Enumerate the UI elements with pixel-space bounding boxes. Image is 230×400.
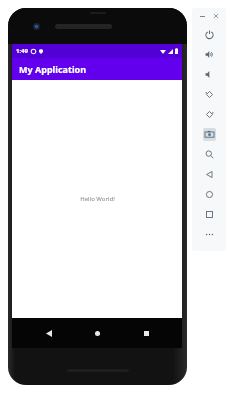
button[interactable]: Volume down <box>192 64 226 84</box>
button[interactable]: Zoom <box>192 144 226 164</box>
button[interactable]: Close <box>211 11 221 21</box>
button[interactable]: Home <box>85 321 109 345</box>
button[interactable]: Volume up <box>192 44 226 64</box>
button[interactable]: Rotate left <box>192 84 226 104</box>
button[interactable]: Take screenshot <box>192 124 226 144</box>
staticText: 1:49 <box>16 47 28 55</box>
button[interactable]: Minimize <box>197 11 207 21</box>
button[interactable]: More <box>192 224 226 244</box>
button[interactable]: Back <box>37 321 61 345</box>
staticText: Hello World! <box>80 195 115 203</box>
button[interactable]: Rotate right <box>192 104 226 124</box>
button[interactable]: Recent apps <box>134 321 158 345</box>
button[interactable]: Overview <box>192 204 226 224</box>
button[interactable]: Power <box>192 24 226 44</box>
button[interactable]: My Application <box>12 58 182 80</box>
button[interactable]: Home <box>192 184 226 204</box>
button[interactable]: Back <box>192 164 226 184</box>
staticText: My Application <box>19 63 87 75</box>
